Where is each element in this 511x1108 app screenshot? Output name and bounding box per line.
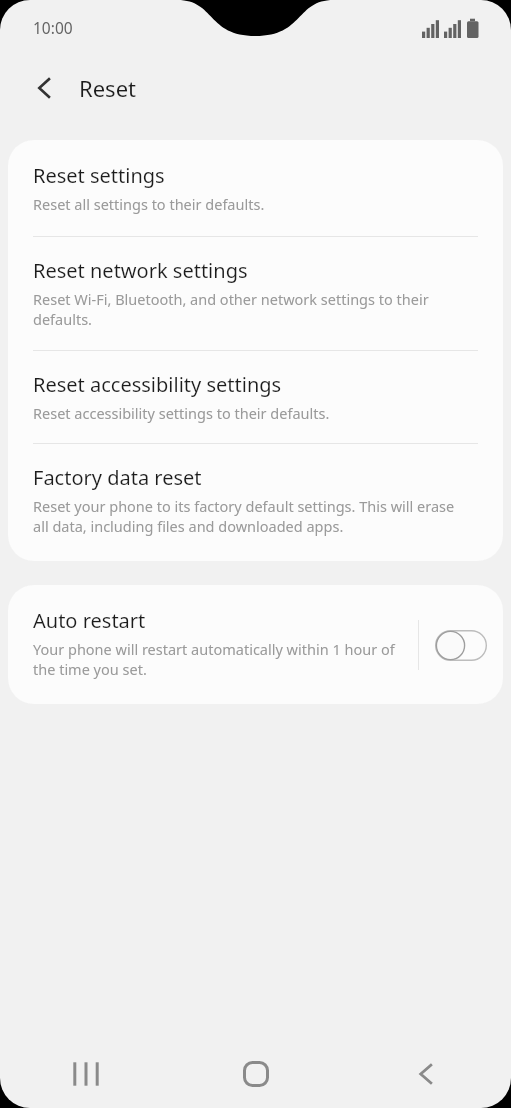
button[interactable]: Back <box>341 1040 511 1108</box>
button[interactable]: Reset network settings <box>8 237 503 350</box>
button[interactable]: Factory data reset <box>8 444 503 561</box>
staticText: Reset all settings to their defaults. <box>33 194 265 214</box>
button[interactable]: Recent apps <box>0 1040 171 1108</box>
staticText: Reset network settings <box>33 257 248 284</box>
staticText: Reset <box>79 73 136 103</box>
staticText: 10:00 <box>33 17 73 38</box>
staticText: Reset accessibility settings <box>33 371 282 398</box>
staticText: Factory data reset <box>33 464 202 491</box>
staticText: Reset settings <box>33 162 165 189</box>
button[interactable]: Back <box>22 65 68 111</box>
staticText: Your phone will restart automatically wi… <box>33 639 410 680</box>
button[interactable]: Auto restart toggle, off <box>433 623 489 667</box>
button[interactable]: Auto restart <box>8 585 503 704</box>
staticText: Reset accessibility settings to their de… <box>33 403 330 423</box>
staticText: Reset Wi-Fi, Bluetooth, and other networ… <box>33 289 469 330</box>
button[interactable]: Reset accessibility settings <box>8 351 503 443</box>
staticText: Auto restart <box>33 607 146 634</box>
button[interactable]: Home <box>171 1040 341 1108</box>
staticText: Reset your phone to its factory default … <box>33 496 469 537</box>
button[interactable]: Reset settings <box>8 140 503 236</box>
